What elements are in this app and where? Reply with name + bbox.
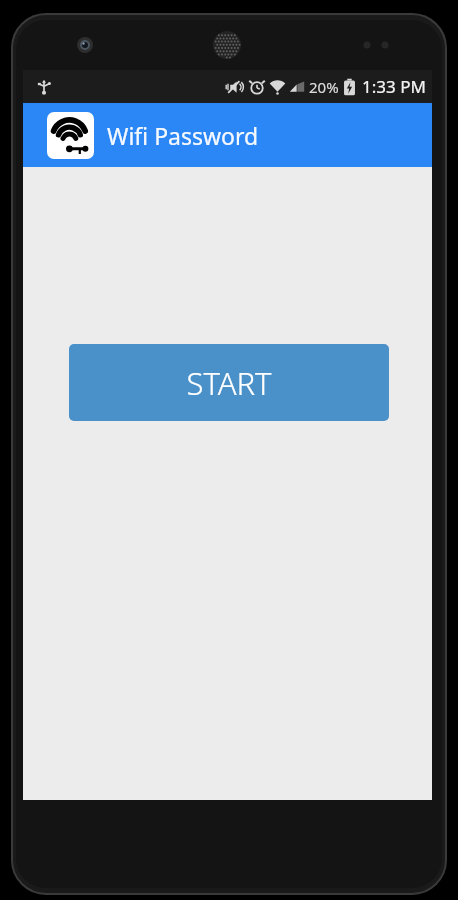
staticText: START [186, 362, 272, 404]
staticText: 20% [309, 77, 339, 97]
other: Wifi Password app icon [47, 112, 94, 159]
button[interactable]: START [69, 344, 389, 421]
staticText: 1:33 PM [362, 75, 426, 98]
staticText: Wifi Password [107, 120, 259, 151]
